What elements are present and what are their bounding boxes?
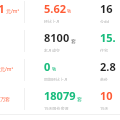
staticText: 万套 — [0, 96, 10, 102]
button[interactable]: 2.8 — [100, 59, 116, 81]
button[interactable]: 15. — [100, 30, 116, 52]
button[interactable]: 0 — [44, 59, 68, 81]
button[interactable]: 16 — [100, 1, 113, 23]
staticText: 元/m² — [6, 8, 20, 15]
staticText: % — [67, 8, 72, 15]
staticText: 16 — [100, 1, 113, 16]
staticText: 今dd — [100, 19, 109, 23]
staticText: 8100 — [44, 30, 70, 45]
staticText: 住宅 — [100, 48, 108, 52]
staticText: 18079 — [44, 88, 76, 103]
staticText: 10 — [100, 88, 113, 103]
button[interactable]: 5.62 — [44, 1, 72, 23]
staticText: 71 — [0, 1, 5, 16]
button[interactable]: 8 — [0, 59, 14, 81]
button[interactable]: 8100 — [44, 30, 76, 52]
staticText: 同期环比上月 — [44, 77, 68, 81]
staticText: 15天 — [100, 106, 109, 110]
staticText: 套 — [77, 96, 82, 102]
staticText: % — [52, 66, 57, 73]
staticText: 0 — [44, 59, 51, 74]
button[interactable]: 18079 — [44, 88, 82, 110]
staticText: 5.62 — [44, 1, 66, 16]
staticText: 环比上月 — [44, 19, 60, 23]
staticText: 15. — [100, 30, 116, 45]
staticText: 15天限价房源 — [44, 106, 69, 110]
staticText: 本月成交 — [44, 48, 60, 52]
button[interactable]: 71 — [0, 1, 20, 23]
staticText: 单价 — [100, 77, 108, 81]
staticText: 2.8 — [100, 59, 116, 74]
button[interactable]: 5 — [0, 88, 10, 110]
staticText: 套 — [71, 38, 76, 44]
button[interactable]: 10 — [100, 88, 113, 110]
staticText: 元/m² — [0, 66, 14, 73]
